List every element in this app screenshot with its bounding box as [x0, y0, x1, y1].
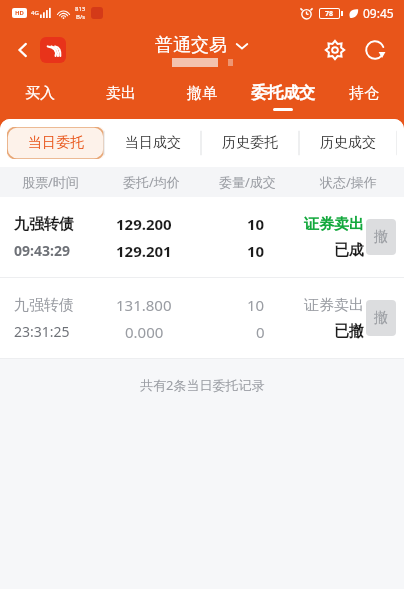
staticText: 78 [325, 9, 334, 18]
staticText: 已成 [334, 241, 364, 260]
staticText: 九强转债 [14, 215, 74, 234]
button[interactable]: 九强转债 [0, 278, 404, 358]
staticText: 卖出 [106, 84, 136, 103]
staticText: 0.000 [125, 322, 164, 342]
staticText: 0 [256, 322, 265, 342]
staticText: 129.201 [116, 241, 172, 261]
staticText: 129.200 [116, 214, 172, 234]
button[interactable]: 买入 [0, 74, 80, 116]
button[interactable]: 当日成交 [104, 127, 201, 159]
staticText: 10 [247, 295, 265, 315]
button[interactable]: Refresh [358, 33, 392, 67]
staticText: 10 [247, 214, 265, 234]
button[interactable]: 委托成交 [242, 74, 323, 116]
staticText: B/s [76, 13, 86, 21]
staticText: HD [15, 9, 24, 17]
button[interactable]: Settings [318, 33, 352, 67]
staticText: 证券卖出 [304, 296, 364, 315]
staticText: 813 [75, 5, 86, 13]
button[interactable]: 九强转债 [0, 197, 404, 277]
staticText: 23:31:25 [14, 322, 70, 341]
staticText: 委量/成交 [219, 173, 276, 191]
staticText: 证券卖出 [304, 215, 364, 234]
button[interactable]: 历史成交 [299, 127, 397, 159]
button[interactable]: 普通交易 [155, 34, 249, 57]
staticText: 当日委托 [28, 134, 84, 152]
button[interactable]: 撤 [366, 219, 396, 255]
button[interactable]: App logo [40, 37, 66, 63]
button[interactable]: 当日委托 [7, 127, 104, 159]
staticText: 撤 [374, 228, 388, 246]
staticText: 持仓 [349, 84, 379, 103]
button[interactable]: 撤单 [161, 74, 242, 116]
button[interactable]: 卖出 [80, 74, 161, 116]
staticText: 状态/操作 [320, 173, 377, 191]
staticText: 委托成交 [251, 83, 315, 103]
staticText: 买入 [25, 84, 55, 103]
staticText: 131.800 [116, 295, 172, 315]
staticText: 09:43:29 [14, 241, 70, 260]
staticText: 撤 [374, 309, 388, 327]
staticText: 委托/均价 [123, 173, 180, 191]
staticText: 股票/时间 [22, 173, 79, 191]
button[interactable]: 撤 [366, 300, 396, 336]
staticText: 九强转债 [14, 296, 74, 315]
staticText: 历史成交 [320, 134, 376, 152]
staticText: 撤单 [187, 84, 217, 103]
staticText: 共有2条当日委托记录 [140, 376, 265, 394]
button[interactable]: 历史委托 [201, 127, 299, 159]
button[interactable]: 持仓 [323, 74, 404, 116]
staticText: 4G [31, 9, 39, 17]
staticText: 09:45 [363, 5, 394, 21]
staticText: 10 [247, 241, 265, 261]
button[interactable]: Back [8, 35, 38, 65]
staticText: 历史委托 [222, 134, 278, 152]
staticText: 当日成交 [125, 134, 181, 152]
staticText: 已撤 [334, 322, 364, 341]
staticText: 普通交易 [155, 34, 227, 57]
